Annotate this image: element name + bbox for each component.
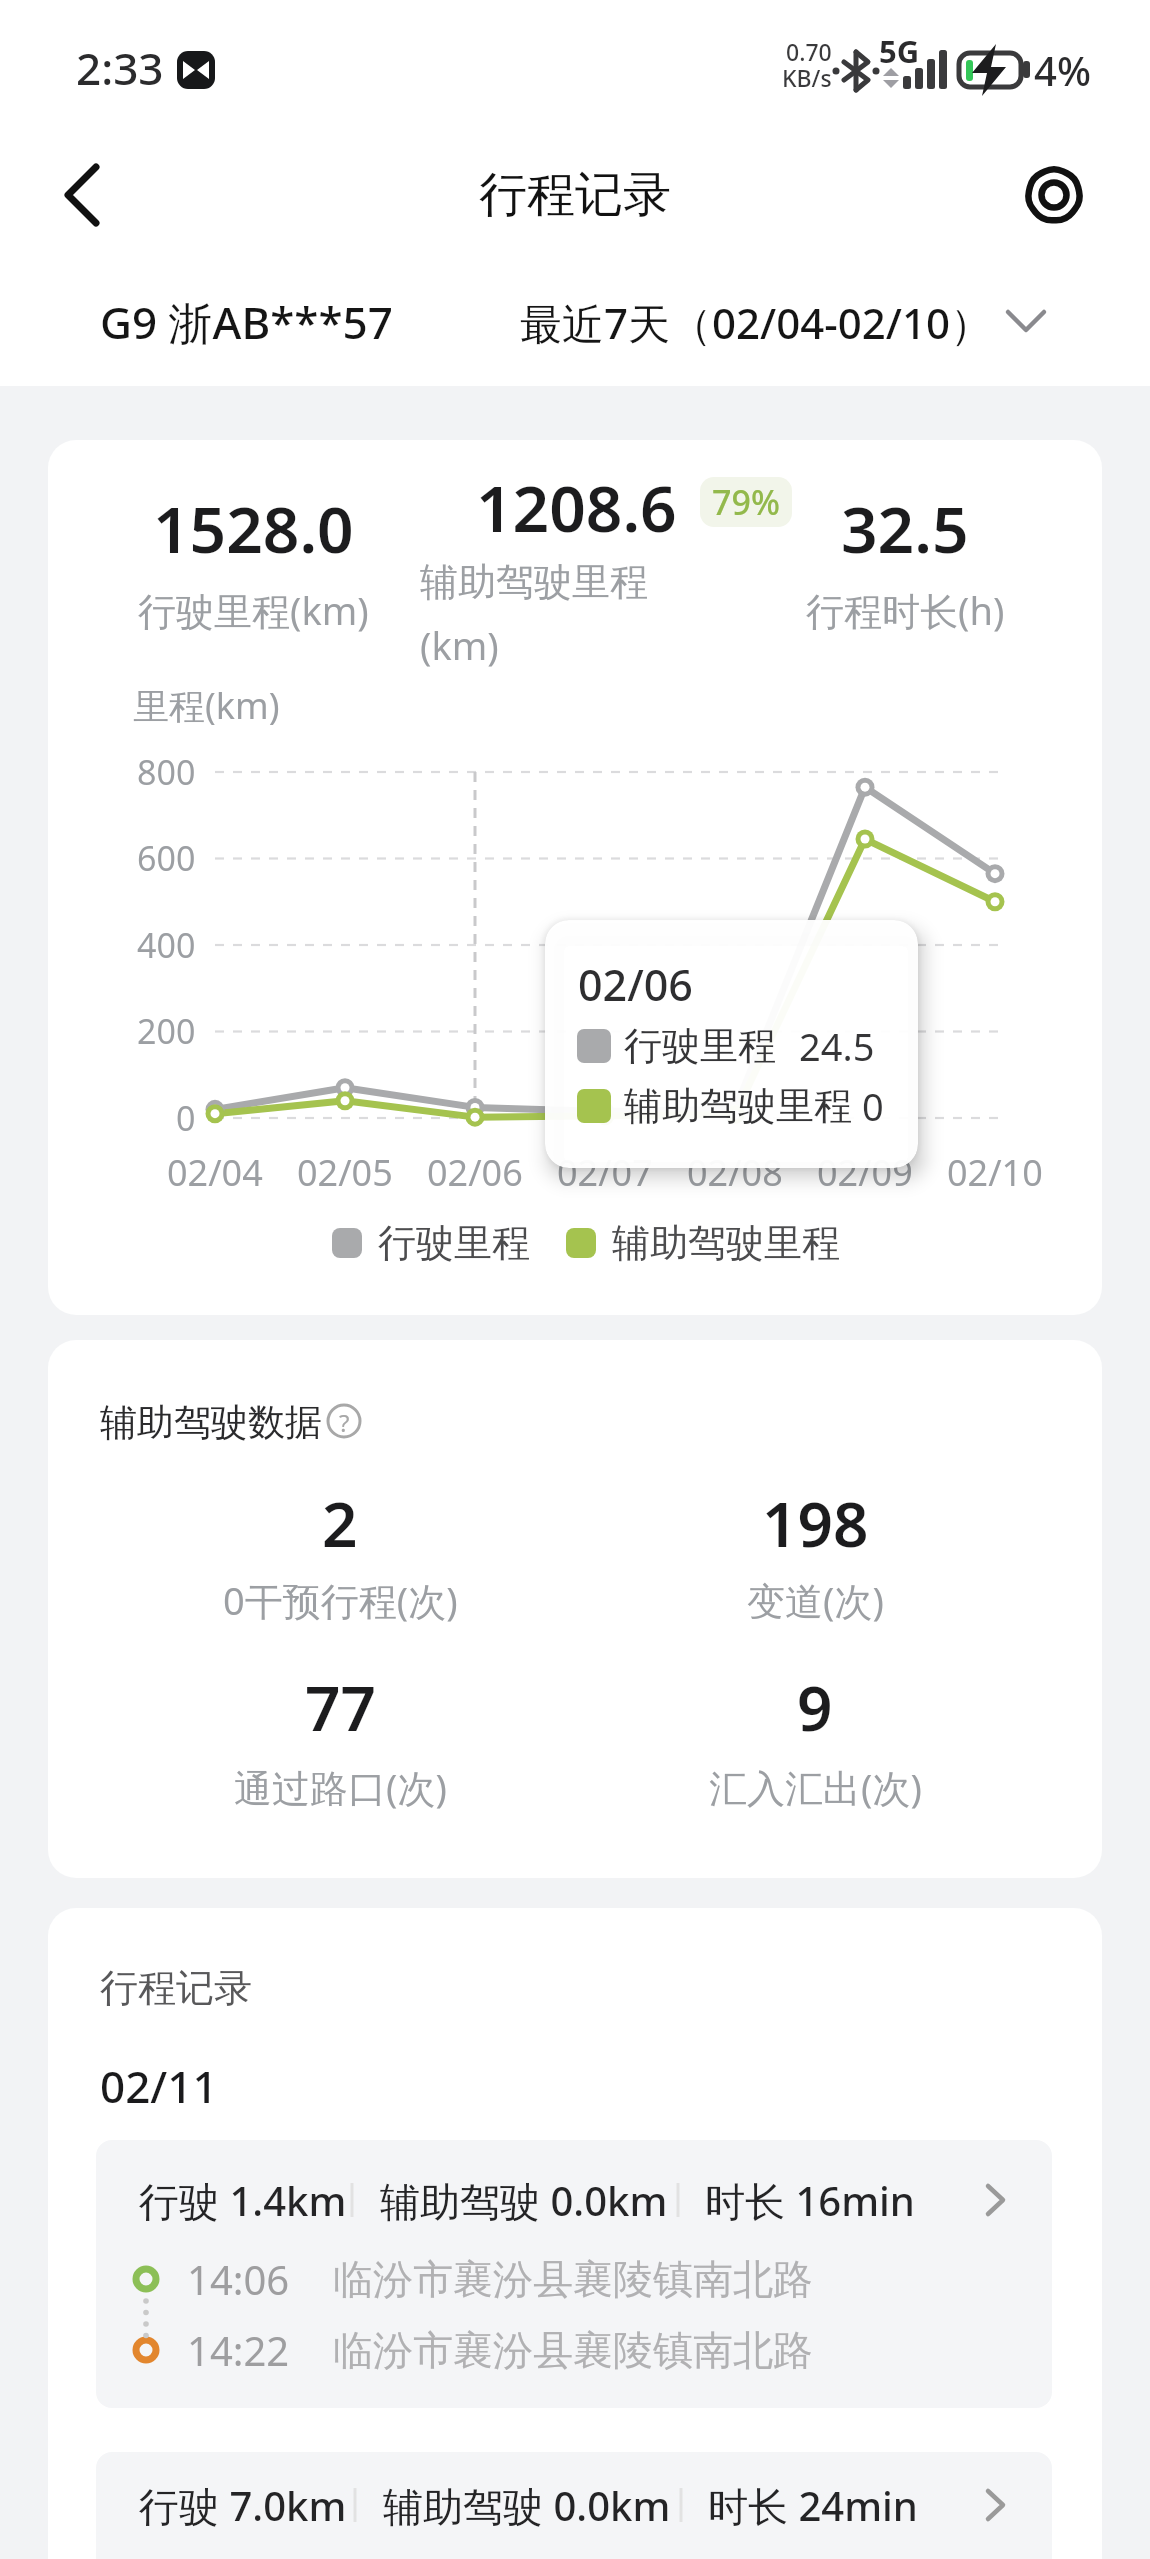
staticText: 198: [762, 1481, 869, 1565]
staticText: 行驶里程(km): [138, 584, 369, 636]
staticText: 行驶 7.0km: [139, 2478, 347, 2533]
staticText: 0.70: [786, 36, 832, 62]
button[interactable]: 最近7天（02/04-02/10）: [520, 280, 1060, 364]
staticText: 辅助驾驶 0.0km: [383, 2478, 671, 2533]
staticText: 2:33: [76, 38, 164, 98]
staticText: 行程记录: [100, 1964, 252, 2012]
staticText: 02/09: [817, 1148, 913, 1197]
staticText: ?: [339, 1406, 350, 1439]
staticText: 里程(km): [133, 681, 280, 730]
staticText: G9 浙AB***57: [100, 292, 393, 352]
staticText: 77: [305, 1665, 376, 1749]
staticText: 行驶里程: [378, 1219, 530, 1267]
staticText: 行程记录: [479, 165, 671, 225]
button[interactable]: [96, 2140, 1052, 2408]
staticText: 1528.0: [153, 485, 354, 572]
staticText: 最近7天（02/04-02/10）: [520, 294, 993, 351]
staticText: 辅助驾驶数据: [100, 1399, 322, 1446]
staticText: 02/08: [687, 1148, 783, 1197]
staticText: 辅助驾驶里程: [612, 1219, 840, 1267]
button[interactable]: [40, 150, 130, 240]
staticText: 变道(次): [747, 1574, 884, 1626]
staticText: 02/11: [100, 2056, 218, 2116]
button[interactable]: [96, 2452, 1052, 2559]
staticText: 临汾市襄汾县襄陵镇南北路: [333, 2254, 813, 2304]
staticText: 02/07: [557, 1148, 653, 1197]
staticText: 02/06: [427, 1148, 523, 1197]
staticText: 400: [137, 922, 196, 968]
staticText: 临汾市襄汾县襄陵镇南北路: [333, 2325, 813, 2375]
staticText: 5G: [879, 30, 920, 68]
staticText: KB/s: [782, 62, 832, 88]
staticText: 辅助驾驶 0.0km: [380, 2173, 668, 2228]
staticText: 行程时长(h): [806, 584, 1005, 636]
staticText: 600: [137, 835, 196, 881]
staticText: 24.5: [799, 1020, 875, 1072]
staticText: 行驶里程: [624, 1022, 776, 1070]
staticText: 02/04: [167, 1148, 263, 1197]
staticText: 32.5: [841, 485, 969, 572]
staticText: 14:06: [187, 2252, 290, 2306]
staticText: 02/06: [578, 955, 693, 1014]
staticText: 行驶 1.4km: [139, 2173, 347, 2228]
staticText: 时长 24min: [708, 2478, 918, 2533]
staticText: 0干预行程(次): [223, 1574, 458, 1626]
staticText: 0: [862, 1080, 884, 1132]
staticText: 200: [137, 1008, 196, 1054]
staticText: 79%: [712, 479, 780, 525]
staticText: 9: [797, 1665, 833, 1749]
staticText: 800: [137, 749, 196, 795]
staticText: 辅助驾驶里程: [420, 558, 648, 606]
staticText: 4%: [1034, 43, 1091, 97]
staticText: 1208.6: [476, 464, 677, 551]
staticText: 0: [176, 1095, 196, 1141]
staticText: 辅助驾驶里程: [624, 1082, 852, 1130]
staticText: 02/10: [947, 1148, 1043, 1197]
button[interactable]: [1010, 150, 1100, 240]
staticText: 通过路口(次): [234, 1761, 447, 1813]
staticText: 时长 16min: [705, 2173, 915, 2228]
staticText: 02/05: [297, 1148, 393, 1197]
staticText: (km): [420, 619, 499, 671]
staticText: 14:22: [187, 2323, 290, 2377]
staticText: 汇入汇出(次): [709, 1761, 922, 1813]
staticText: 2: [322, 1481, 358, 1565]
